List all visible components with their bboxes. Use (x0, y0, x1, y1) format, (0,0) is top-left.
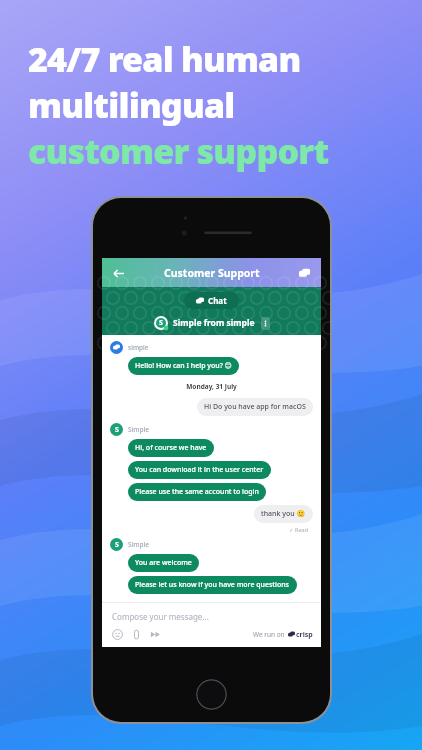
button[interactable]: Please let us know if you have more ques… (128, 576, 297, 594)
button[interactable]: Send audio (150, 629, 161, 640)
staticText: Please let us know if you have more ques… (135, 580, 290, 590)
staticText: Simple (128, 425, 150, 434)
staticText: Simple from simple (173, 317, 255, 329)
button[interactable]: Chat (184, 292, 239, 309)
staticText: S (115, 425, 119, 435)
staticText: thank you 🙂 (261, 509, 306, 519)
button[interactable]: Please use the same account to login (128, 483, 266, 501)
button[interactable]: New chat (294, 263, 314, 283)
staticText: Compose your message... (112, 611, 209, 622)
staticText: Chat (208, 295, 227, 306)
button[interactable]: Emoji (112, 629, 123, 640)
staticText: We run on (253, 630, 285, 639)
staticText: S (159, 318, 163, 328)
staticText: Hello! How can I help you? 😊 (135, 361, 232, 371)
staticText: multilingual (28, 82, 235, 128)
button[interactable]: Hi Do you have app for macOS (197, 398, 313, 416)
staticText: Hi Do you have app for macOS (204, 402, 306, 412)
staticText: ✓ Read (289, 526, 309, 533)
staticText: Hi, of course we have (135, 443, 207, 453)
staticText: crisp (296, 630, 313, 640)
button[interactable]: Home (196, 679, 227, 710)
staticText: Simple (128, 540, 150, 549)
staticText: You can download it in the user center (135, 465, 264, 475)
button[interactable]: Hello! How can I help you? 😊 (128, 357, 239, 375)
button[interactable]: You can download it in the user center (128, 461, 271, 479)
staticText: S (115, 540, 119, 550)
button[interactable]: Attach file (131, 629, 142, 640)
button[interactable]: More options (261, 317, 270, 330)
button[interactable]: thank you 🙂 (254, 505, 313, 523)
staticText: Please use the same account to login (135, 487, 259, 497)
staticText: Customer Support (164, 266, 260, 280)
staticText: customer support (28, 128, 329, 174)
staticText: 24/7 real human (28, 36, 301, 82)
button[interactable]: Hi, of course we have (128, 439, 214, 457)
button[interactable]: You are welcome (128, 554, 199, 572)
staticText: You are welcome (135, 558, 192, 568)
staticText: Monday, 31 July (186, 382, 237, 391)
staticText: simple (128, 343, 149, 352)
button[interactable]: Back (108, 263, 128, 283)
